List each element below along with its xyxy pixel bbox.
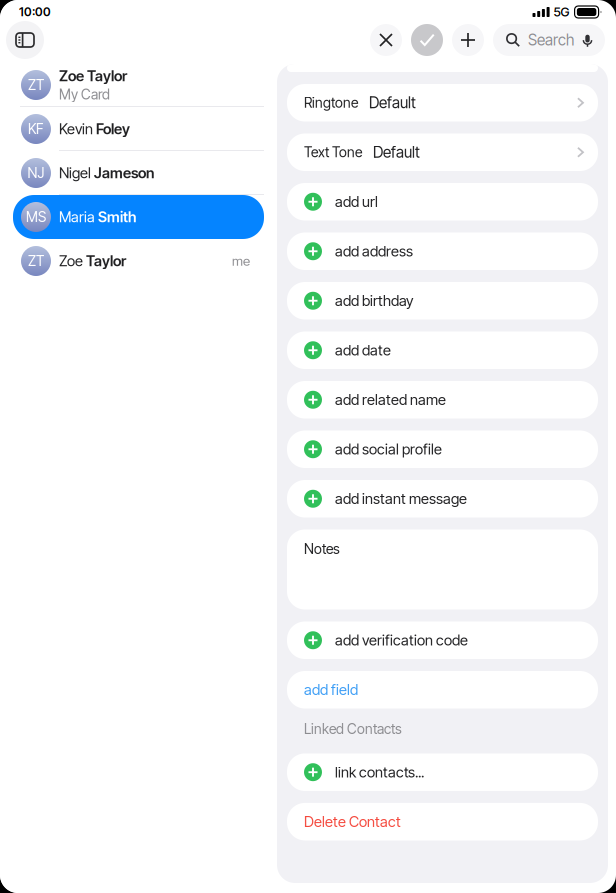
button[interactable]: Ringtone [287,84,598,121]
button[interactable]: Toggle Sidebar [6,21,44,59]
staticText: Taylor [86,252,126,270]
button[interactable]: add social profile [287,430,598,468]
staticText: add date [335,341,391,359]
staticText: 10:00 [19,5,51,19]
button[interactable]: ZT [13,63,264,107]
staticText: add url [335,193,378,211]
button[interactable]: Cancel [370,24,402,56]
button[interactable]: Text Tone [287,133,598,171]
staticText: Taylor [87,67,127,85]
button[interactable]: add url [287,183,598,220]
staticText: ZT [28,76,44,93]
staticText: Notes [304,540,340,557]
button[interactable]: ZT [13,239,264,283]
staticText: Maria [59,208,95,226]
staticText: Ringtone [304,94,358,111]
staticText: Zoe [59,252,83,270]
staticText: add birthday [335,292,413,310]
staticText: Foley [96,120,130,138]
button[interactable]: add related name [287,381,598,418]
button[interactable]: KF [13,107,264,151]
button[interactable]: Add [452,24,484,56]
button[interactable]: NJ [13,151,264,195]
staticText: My Card [59,86,110,103]
button[interactable]: add date [287,331,598,369]
staticText: 5G [554,4,570,20]
staticText: Jameson [94,164,154,182]
button[interactable]: add address [287,232,598,270]
button[interactable]: add verification code [287,621,598,659]
staticText: add instant message [335,490,467,508]
staticText: Linked Contacts [304,720,402,737]
staticText: Zoe [59,67,84,85]
staticText: Smith [98,208,136,226]
button[interactable]: Delete Contact [287,803,598,840]
button[interactable]: link contacts... [287,753,598,791]
staticText: Nigel [59,164,91,182]
staticText: Text Tone [304,144,362,161]
staticText: Delete Contact [304,813,401,830]
staticText: me [232,253,250,269]
button[interactable]: add birthday [287,282,598,319]
staticText: Default [373,143,420,162]
staticText: KF [28,120,44,137]
staticText: MS [26,208,46,225]
button[interactable]: MS [13,195,264,239]
staticText: add verification code [335,631,468,649]
button[interactable]: add field [287,671,598,708]
staticText: Kevin [59,120,93,138]
staticText: NJ [27,164,44,181]
staticText: Search [528,31,574,49]
staticText: Default [369,93,416,112]
button[interactable]: Search [493,24,605,56]
staticText: link contacts... [335,763,424,781]
button[interactable]: Done [411,24,443,56]
staticText: add social profile [335,440,442,458]
staticText: ZT [28,252,44,269]
button[interactable]: add instant message [287,480,598,517]
staticText: add address [335,242,413,260]
staticText: add field [304,681,358,699]
staticText: add related name [335,391,446,409]
